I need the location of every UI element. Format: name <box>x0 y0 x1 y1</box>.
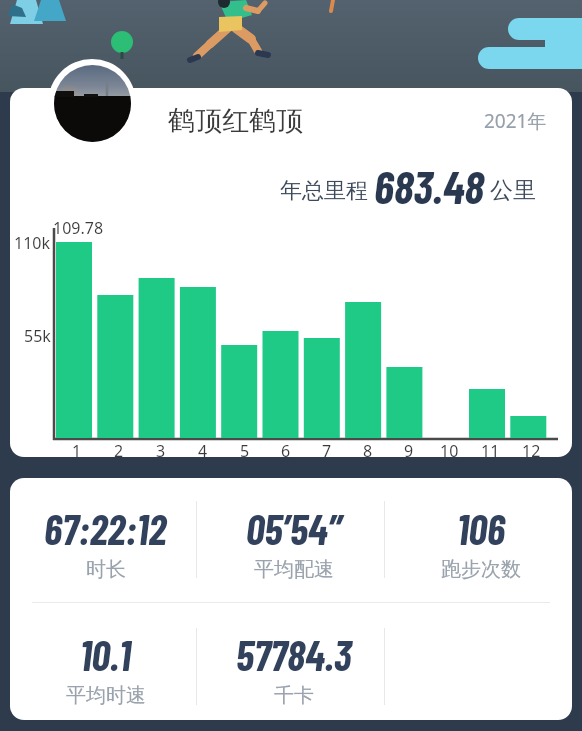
staticText: 1 <box>72 440 82 457</box>
staticText: 千卡 <box>274 683 314 708</box>
button[interactable] <box>48 59 136 147</box>
button[interactable]: 2021年 <box>484 108 547 134</box>
staticText: 110k <box>14 232 51 254</box>
staticText: 5 <box>240 440 250 457</box>
button[interactable]: 57784.3 <box>200 629 387 679</box>
staticText: 67:22:12 <box>44 503 167 553</box>
staticText: 683.48 <box>374 158 484 213</box>
button[interactable]: 106 <box>387 503 572 553</box>
staticText: 4 <box>198 440 208 457</box>
staticText: 鹤顶红鹤顶 <box>168 104 303 138</box>
staticText: 年总里程 <box>280 174 374 204</box>
staticText: 05’54” <box>246 503 342 553</box>
staticText: 12 <box>522 440 541 457</box>
button[interactable]: 67:22:12 <box>12 503 199 553</box>
staticText: 2 <box>114 440 124 457</box>
staticText: 10 <box>440 440 459 457</box>
staticText: 平均配速 <box>254 557 334 582</box>
staticText: 平均时速 <box>66 683 146 708</box>
button[interactable]: 10.1 <box>12 629 199 679</box>
staticText: 8 <box>363 440 373 457</box>
staticText: 9 <box>404 440 414 457</box>
staticText: 6 <box>281 440 291 457</box>
staticText: 时长 <box>86 557 126 582</box>
staticText: 55k <box>24 325 51 347</box>
button[interactable]: 05’54” <box>200 503 387 553</box>
staticText: 跑步次数 <box>441 557 521 582</box>
staticText: 11 <box>481 440 500 457</box>
staticText: 57784.3 <box>236 629 352 679</box>
staticText: 公里 <box>484 173 536 204</box>
staticText: 3 <box>156 440 166 457</box>
staticText: 10.1 <box>80 629 131 679</box>
staticText: 109.78 <box>53 217 104 239</box>
staticText: 7 <box>322 440 332 457</box>
staticText: 106 <box>457 503 505 553</box>
